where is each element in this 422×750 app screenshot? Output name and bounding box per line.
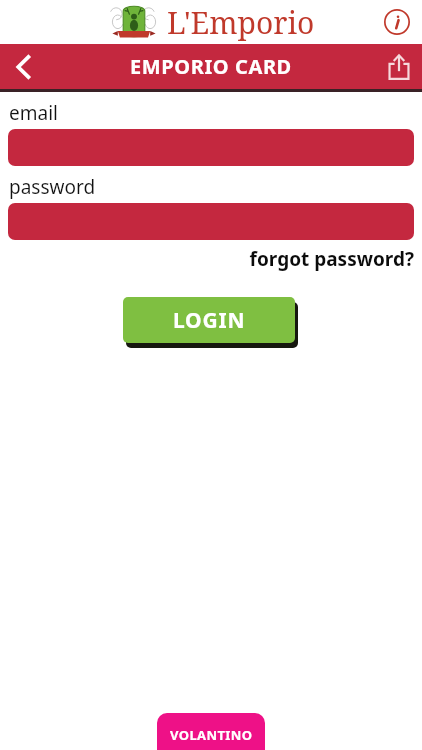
staticText: EMPORIO CARD: [130, 53, 292, 80]
button[interactable]: VOLANTINO: [157, 713, 265, 750]
staticText: password: [9, 174, 96, 200]
staticText: L'Emporio: [167, 2, 315, 43]
staticText: email: [9, 100, 58, 126]
staticText: VOLANTINO: [170, 726, 253, 744]
button[interactable]: forgot password?: [0, 246, 422, 272]
button[interactable]: Share: [376, 44, 422, 89]
staticText: LOGIN: [173, 306, 246, 335]
staticText: forgot password?: [249, 246, 414, 272]
button[interactable]: LOGIN: [123, 297, 295, 343]
button[interactable]: [8, 129, 414, 166]
button[interactable]: [8, 203, 414, 240]
button[interactable]: Info: [380, 5, 414, 39]
button[interactable]: Back: [0, 44, 48, 89]
